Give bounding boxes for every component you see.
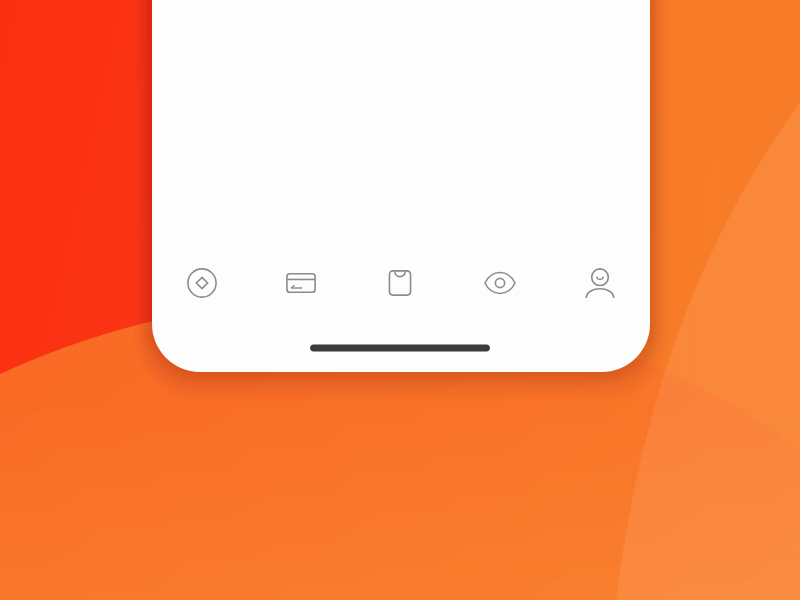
button[interactable]: Cards bbox=[251, 255, 350, 311]
button[interactable]: Discover bbox=[450, 255, 550, 311]
button[interactable]: Profile bbox=[550, 255, 650, 311]
button[interactable]: Shop bbox=[350, 255, 450, 311]
button[interactable]: Rewards bbox=[152, 255, 251, 311]
